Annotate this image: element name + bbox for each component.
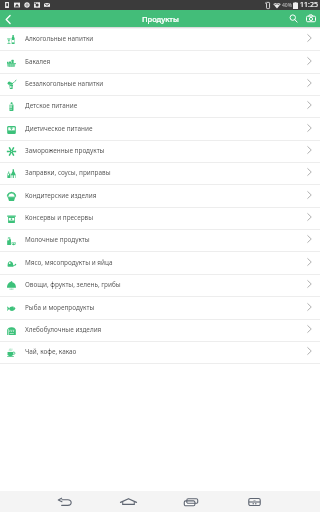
button[interactable]: Бакалея [0, 51, 320, 74]
button[interactable]: Овощи, фрукты, зелень, грибы [0, 274, 320, 297]
button[interactable]: Screenshot [243, 491, 265, 512]
staticText: Заправки, соусы, приправы [25, 168, 111, 177]
staticText: Овощи, фрукты, зелень, грибы [25, 280, 121, 289]
staticText: Продукты [142, 14, 179, 24]
button[interactable]: Алкогольные напитки [0, 28, 320, 51]
button[interactable]: Search [285, 10, 302, 27]
button[interactable]: Заправки, соусы, приправы [0, 162, 320, 185]
button[interactable]: Молочные продукты [0, 229, 320, 252]
button[interactable]: Home [117, 491, 139, 512]
button[interactable]: Back [0, 11, 16, 27]
button[interactable]: Scan [302, 10, 319, 27]
button[interactable]: Back [54, 491, 76, 512]
button[interactable]: Детское питание [0, 95, 320, 118]
staticText: Замороженные продукты [25, 146, 105, 155]
staticText: Рыба и морепродукты [25, 303, 95, 312]
staticText: Детское питание [25, 101, 78, 110]
staticText: Хлебобулочные изделия [25, 325, 102, 334]
staticText: Консервы и пресервы [25, 213, 94, 222]
button[interactable]: Кондитерские изделия [0, 185, 320, 208]
button[interactable]: Рыба и морепродукты [0, 297, 320, 320]
button[interactable]: Диетическое питание [0, 118, 320, 141]
staticText: Чай, кофе, какао [25, 347, 77, 356]
button[interactable]: Хлебобулочные изделия [0, 319, 320, 342]
staticText: Молочные продукты [25, 235, 90, 244]
staticText: Алкогольные напитки [25, 34, 94, 43]
button[interactable]: Мясо, мясопродукты и яйца [0, 252, 320, 275]
staticText: 11:25 [300, 0, 318, 10]
button[interactable]: Чай, кофе, какао [0, 341, 320, 364]
button[interactable]: Безалкогольные напитки [0, 73, 320, 96]
staticText: Кондитерские изделия [25, 191, 97, 200]
staticText: Диетическое питание [25, 124, 93, 133]
button[interactable]: Консервы и пресервы [0, 207, 320, 230]
staticText: 40% [282, 2, 292, 9]
staticText: Безалкогольные напитки [25, 79, 104, 88]
button[interactable]: Recent apps [180, 491, 202, 512]
staticText: Мясо, мясопродукты и яйца [25, 258, 113, 267]
button[interactable]: Замороженные продукты [0, 140, 320, 163]
staticText: Бакалея [25, 57, 51, 66]
